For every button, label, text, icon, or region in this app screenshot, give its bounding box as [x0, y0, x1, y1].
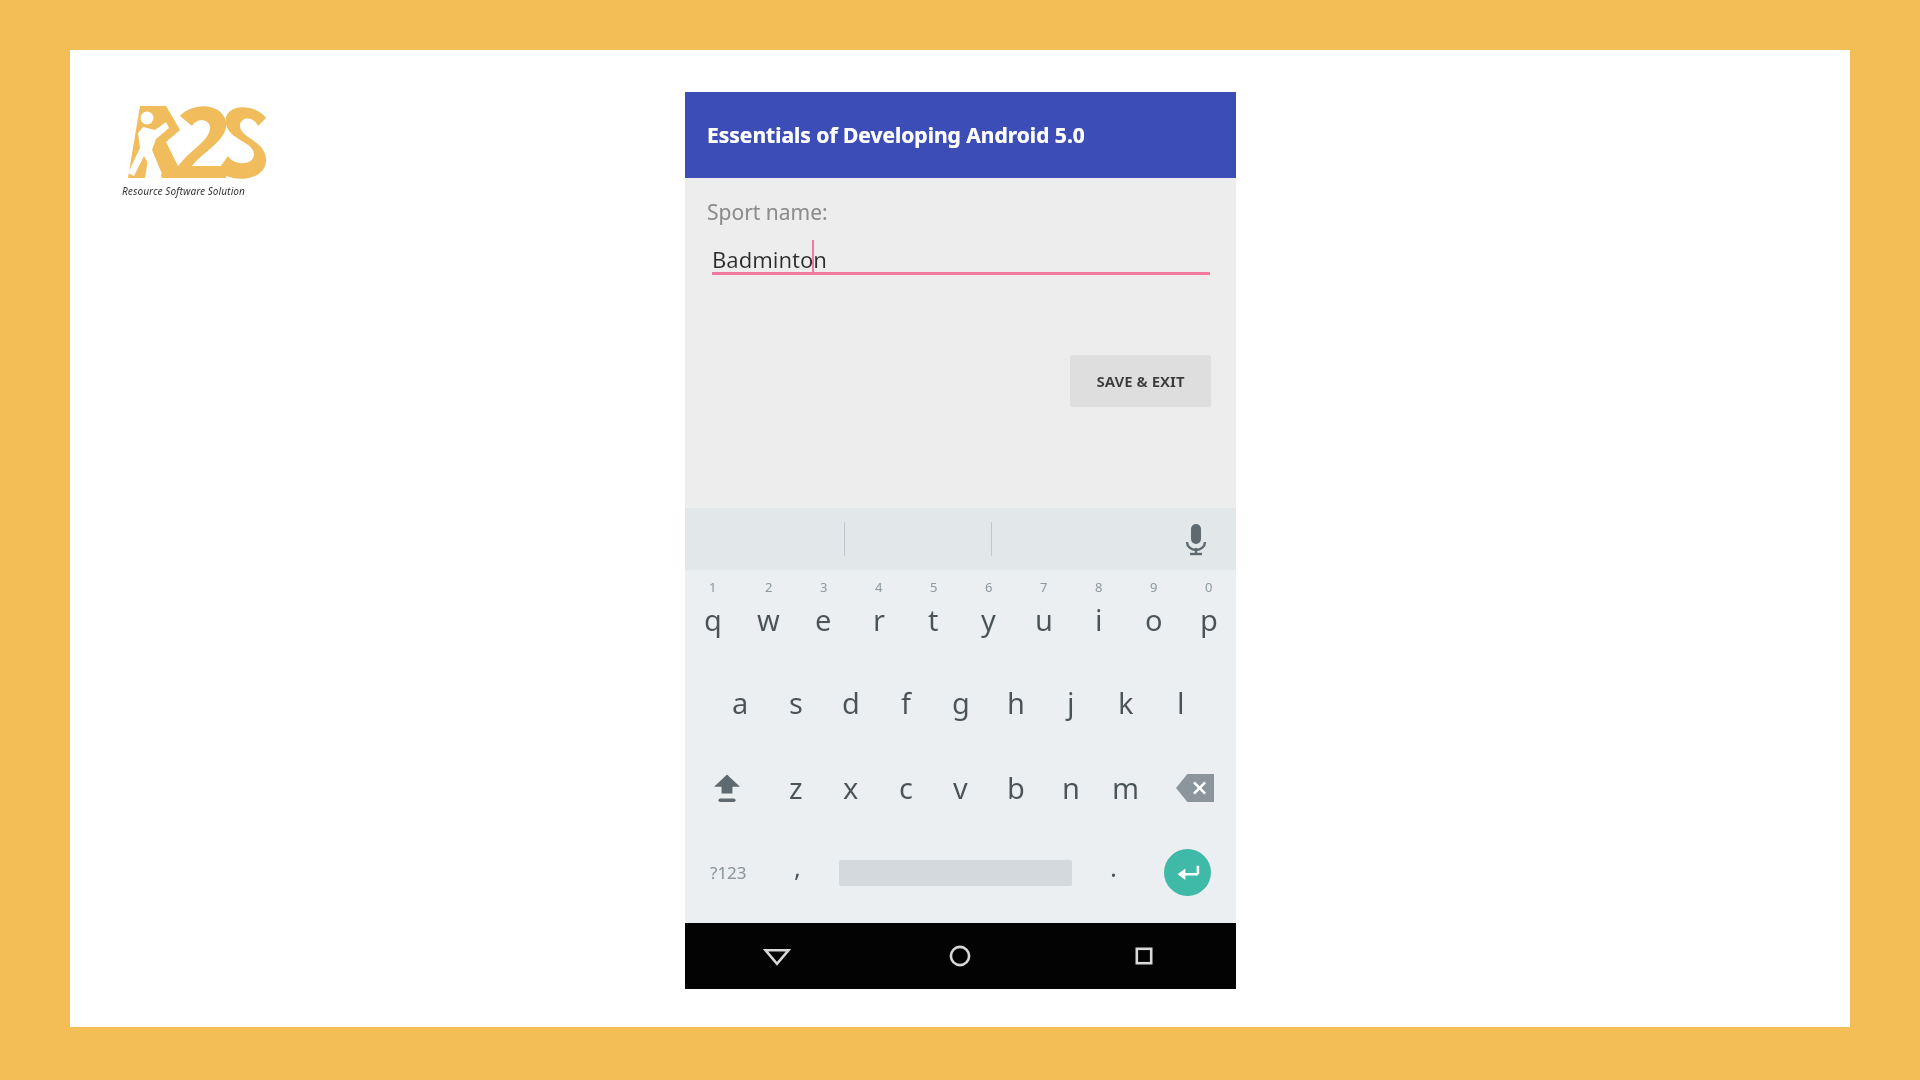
staticText: m [1112, 768, 1140, 807]
button[interactable]: j [1043, 660, 1098, 745]
staticText: r [873, 600, 885, 639]
button[interactable]: . [1088, 830, 1139, 915]
button[interactable]: 7 [1016, 570, 1071, 660]
staticText: SAVE & EXIT [1096, 371, 1185, 391]
staticText: w [757, 600, 780, 639]
button[interactable]: b [988, 745, 1043, 830]
button[interactable]: k [1098, 660, 1153, 745]
button[interactable]: 3 [796, 570, 851, 660]
button[interactable]: Space [823, 830, 1088, 915]
staticText: Badminton [712, 244, 827, 274]
staticText: , [794, 849, 801, 884]
staticText: j [1067, 683, 1075, 722]
button[interactable]: a [713, 660, 768, 745]
button[interactable]: 8 [1071, 570, 1126, 660]
staticText: n [1062, 768, 1080, 807]
button[interactable]: 9 [1126, 570, 1181, 660]
staticText: i [1095, 600, 1103, 639]
button[interactable]: SAVE & EXIT [1070, 355, 1211, 407]
button[interactable]: 1 [685, 570, 741, 660]
staticText: Resource Software Solution [122, 184, 245, 198]
staticText: f [901, 683, 911, 722]
staticText: 0 [1205, 578, 1213, 596]
staticText: 3 [820, 578, 828, 596]
staticText: d [842, 683, 860, 722]
staticText: a [732, 683, 749, 722]
button[interactable]: h [988, 660, 1043, 745]
button[interactable]: Enter [1139, 830, 1236, 915]
button[interactable]: 0 [1181, 570, 1236, 660]
staticText: ?123 [710, 861, 747, 884]
button[interactable]: d [823, 660, 878, 745]
staticText: h [1007, 683, 1025, 722]
button[interactable]: v [933, 745, 988, 830]
staticText: 6 [985, 578, 993, 596]
button[interactable]: Voice input [1172, 516, 1220, 562]
staticText: . [1110, 849, 1117, 884]
button[interactable]: Recent apps [1052, 923, 1236, 989]
staticText: g [952, 683, 970, 722]
button[interactable]: c [878, 745, 933, 830]
staticText: q [704, 600, 722, 639]
staticText: 2 [765, 578, 773, 596]
staticText: e [815, 600, 832, 639]
staticText: Essentials of Developing Android 5.0 [707, 121, 1085, 150]
staticText: c [899, 768, 913, 807]
button[interactable]: Backspace [1153, 745, 1236, 830]
button[interactable]: 6 [961, 570, 1016, 660]
button[interactable]: 4 [851, 570, 906, 660]
staticText: p [1200, 600, 1218, 639]
staticText: Sport name: [707, 198, 828, 227]
staticText: u [1035, 600, 1053, 639]
button[interactable]: z [768, 745, 823, 830]
staticText: l [1177, 683, 1185, 722]
staticText: 5 [930, 578, 938, 596]
staticText: v [953, 768, 968, 807]
button[interactable]: ?123 [685, 830, 772, 915]
staticText: o [1145, 600, 1163, 639]
staticText: 1 [709, 578, 717, 596]
staticText: 4 [875, 578, 883, 596]
staticText: s [789, 683, 803, 722]
staticText: y [981, 600, 996, 639]
button[interactable]: 2 [741, 570, 796, 660]
button[interactable]: s [768, 660, 823, 745]
button[interactable]: n [1043, 745, 1098, 830]
button[interactable]: , [772, 830, 823, 915]
button[interactable]: Home [868, 923, 1052, 989]
button[interactable]: x [823, 745, 878, 830]
button[interactable]: Back [685, 923, 868, 989]
staticText: 7 [1040, 578, 1048, 596]
staticText: k [1118, 683, 1134, 722]
button[interactable]: l [1153, 660, 1208, 745]
button[interactable]: m [1098, 745, 1153, 830]
staticText: x [843, 768, 859, 807]
button[interactable]: g [933, 660, 988, 745]
staticText: t [928, 600, 939, 639]
button[interactable]: Shift [685, 745, 768, 830]
staticText: z [789, 768, 803, 807]
staticText: b [1007, 768, 1025, 807]
staticText: 8 [1095, 578, 1103, 596]
button[interactable]: f [878, 660, 933, 745]
button[interactable]: 5 [906, 570, 961, 660]
staticText: 9 [1150, 578, 1158, 596]
